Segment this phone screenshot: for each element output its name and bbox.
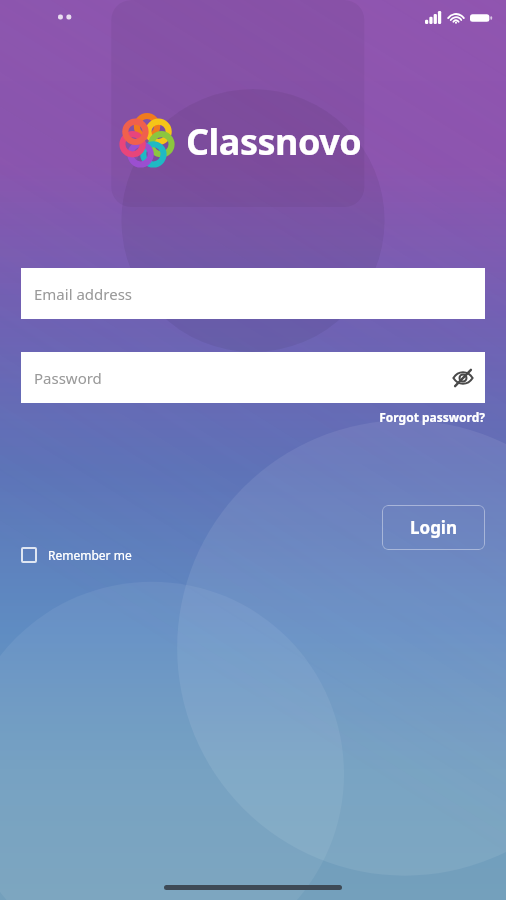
staticText: Email address (34, 284, 133, 304)
staticText: Password (34, 368, 102, 388)
button[interactable]: Show password (441, 356, 485, 400)
staticText: Classnovo (186, 117, 362, 166)
button[interactable]: Remember me (21, 547, 132, 563)
button[interactable]: Password (21, 352, 485, 403)
button[interactable]: Login (382, 505, 485, 550)
button[interactable]: Email address (21, 268, 485, 319)
staticText: Remember me (48, 547, 132, 563)
staticText: Login (410, 516, 458, 539)
button[interactable]: Forgot password? (379, 409, 485, 425)
